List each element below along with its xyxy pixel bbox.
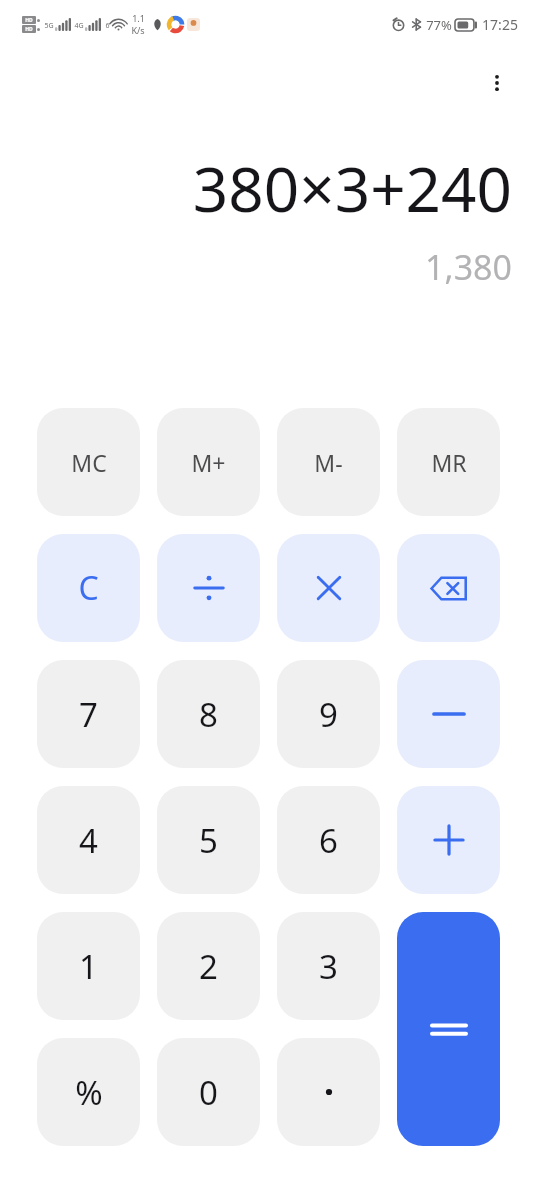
- button[interactable]: 1: [37, 912, 140, 1020]
- button[interactable]: Divide: [157, 534, 260, 642]
- button[interactable]: M+: [157, 408, 260, 516]
- button[interactable]: 3: [277, 912, 380, 1020]
- staticText: 1,380: [425, 244, 512, 290]
- staticText: MR: [431, 447, 467, 478]
- staticText: 17:25: [482, 15, 518, 34]
- staticText: K/s: [131, 24, 145, 36]
- button[interactable]: Minus: [397, 660, 500, 768]
- button[interactable]: 4: [37, 786, 140, 894]
- staticText: 3: [319, 944, 338, 989]
- staticText: 4G: [74, 21, 84, 31]
- button[interactable]: [277, 1038, 380, 1146]
- button[interactable]: 9: [277, 660, 380, 768]
- staticText: 6: [319, 818, 338, 863]
- button[interactable]: M-: [277, 408, 380, 516]
- staticText: 4: [79, 818, 98, 863]
- staticText: 0: [199, 1070, 218, 1115]
- staticText: MC: [71, 447, 107, 478]
- button[interactable]: 2: [157, 912, 260, 1020]
- button[interactable]: Multiply: [277, 534, 380, 642]
- staticText: 5: [199, 818, 218, 863]
- staticText: 1.1: [132, 12, 145, 24]
- button[interactable]: 7: [37, 660, 140, 768]
- button[interactable]: 8: [157, 660, 260, 768]
- button[interactable]: MR: [397, 408, 500, 516]
- staticText: 1: [79, 944, 98, 989]
- button[interactable]: Plus: [397, 786, 500, 894]
- button[interactable]: 0: [157, 1038, 260, 1146]
- staticText: 77%: [426, 16, 452, 34]
- staticText: 380×3+240: [192, 146, 512, 230]
- staticText: HD: [25, 17, 33, 24]
- button[interactable]: 6: [277, 786, 380, 894]
- staticText: 5G: [44, 21, 54, 31]
- staticText: HD: [25, 26, 33, 33]
- button[interactable]: MC: [37, 408, 140, 516]
- button[interactable]: Backspace: [397, 534, 500, 642]
- button[interactable]: 5: [157, 786, 260, 894]
- staticText: 8: [199, 692, 218, 737]
- button[interactable]: %: [37, 1038, 140, 1146]
- staticText: 9: [319, 692, 338, 737]
- staticText: 7: [79, 692, 98, 737]
- staticText: C: [78, 566, 99, 610]
- staticText: %: [75, 1070, 103, 1115]
- staticText: 6: [105, 21, 110, 31]
- staticText: M+: [191, 447, 226, 478]
- staticText: 2: [199, 944, 218, 989]
- button[interactable]: More options: [473, 59, 521, 107]
- button[interactable]: Clear: [37, 534, 140, 642]
- staticText: M-: [314, 447, 343, 478]
- button[interactable]: Equals: [397, 912, 500, 1146]
